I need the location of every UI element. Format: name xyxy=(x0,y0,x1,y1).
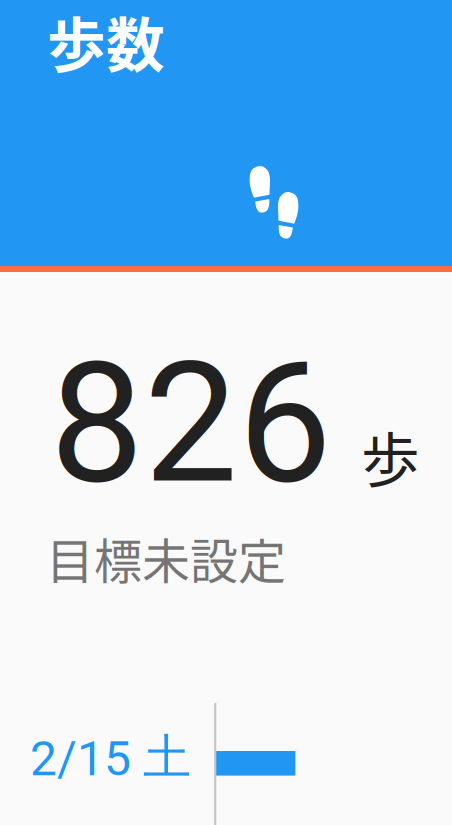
button[interactable]: 2/15 土 xyxy=(0,703,452,777)
button[interactable]: Step tracking xyxy=(249,166,300,239)
staticText: 歩数 xyxy=(47,0,165,84)
staticText: 目標未設定 xyxy=(46,523,286,592)
staticText: 2/15 土 xyxy=(30,727,191,787)
staticText: 歩 xyxy=(361,414,420,499)
staticText: 826 xyxy=(50,326,332,521)
